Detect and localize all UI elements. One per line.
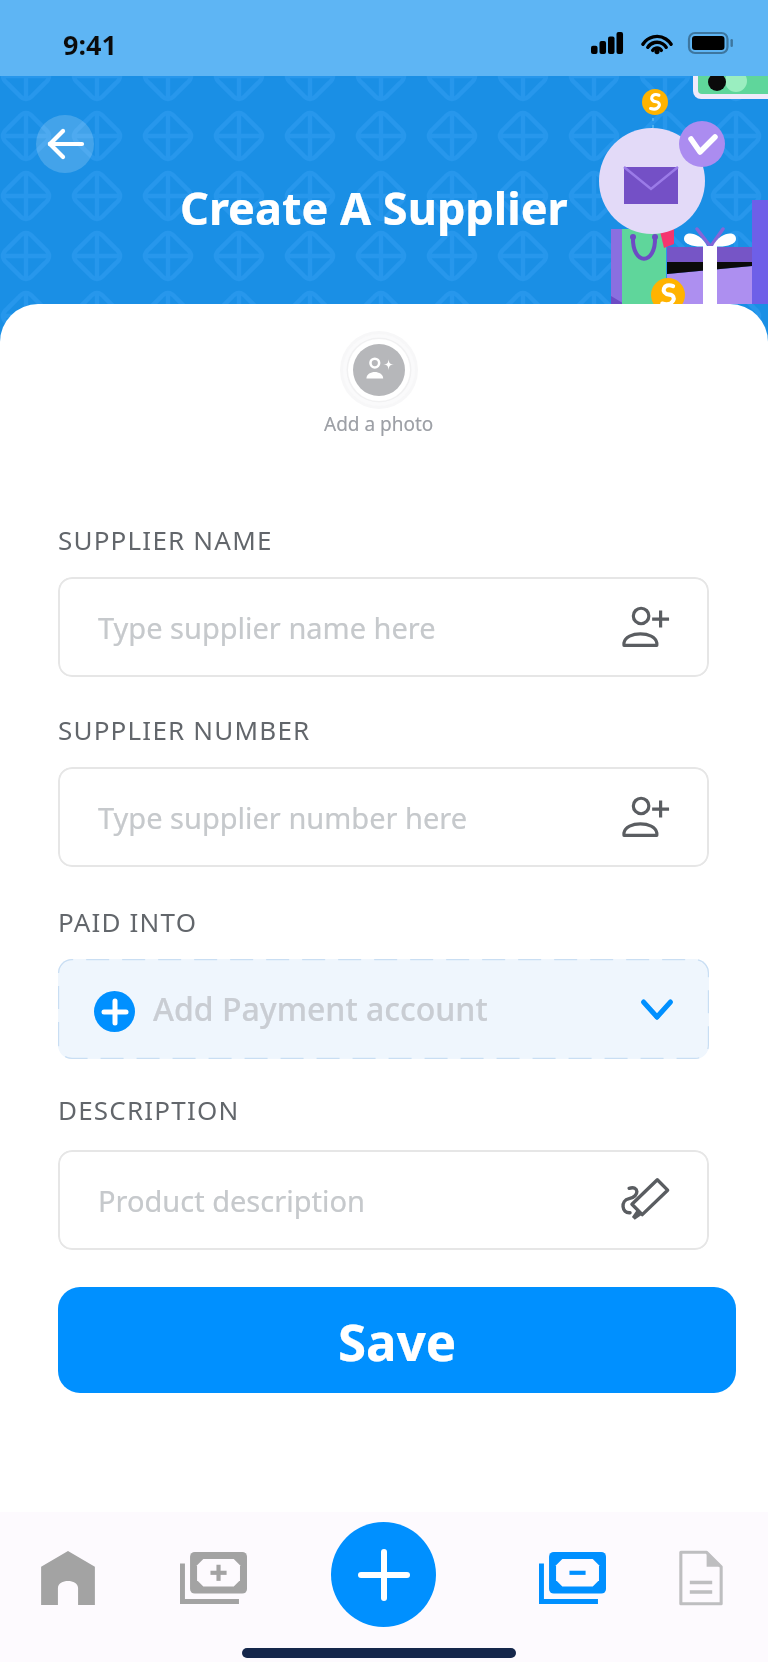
staticText: Add a photo [324,411,434,437]
staticText: Type supplier number here [98,798,468,837]
button[interactable]: Type supplier name here [58,577,709,677]
staticText: SUPPLIER NUMBER [58,712,311,747]
staticText: SUPPLIER NAME [58,522,273,557]
button[interactable]: Add Payment account [58,959,709,1059]
button[interactable]: Money in [169,1534,257,1622]
button[interactable]: Save [58,1287,736,1393]
button[interactable]: Type supplier number here [58,767,709,867]
staticText: Type supplier name here [98,608,436,647]
staticText: 9:41 [63,26,117,63]
button[interactable]: Product description [58,1150,709,1250]
staticText: Add Payment account [153,987,488,1031]
button[interactable]: Add a photo [0,330,763,437]
button[interactable]: Home [24,1534,112,1622]
staticText: Create A Supplier [180,177,568,238]
staticText: PAID INTO [58,904,198,939]
button[interactable]: Back [36,115,94,173]
staticText: Product description [98,1181,365,1220]
button[interactable]: Documents [657,1534,745,1622]
button[interactable]: Money out [528,1534,616,1622]
button[interactable]: Add [331,1522,436,1627]
staticText: Save [338,1306,457,1375]
staticText: DESCRIPTION [58,1092,240,1127]
